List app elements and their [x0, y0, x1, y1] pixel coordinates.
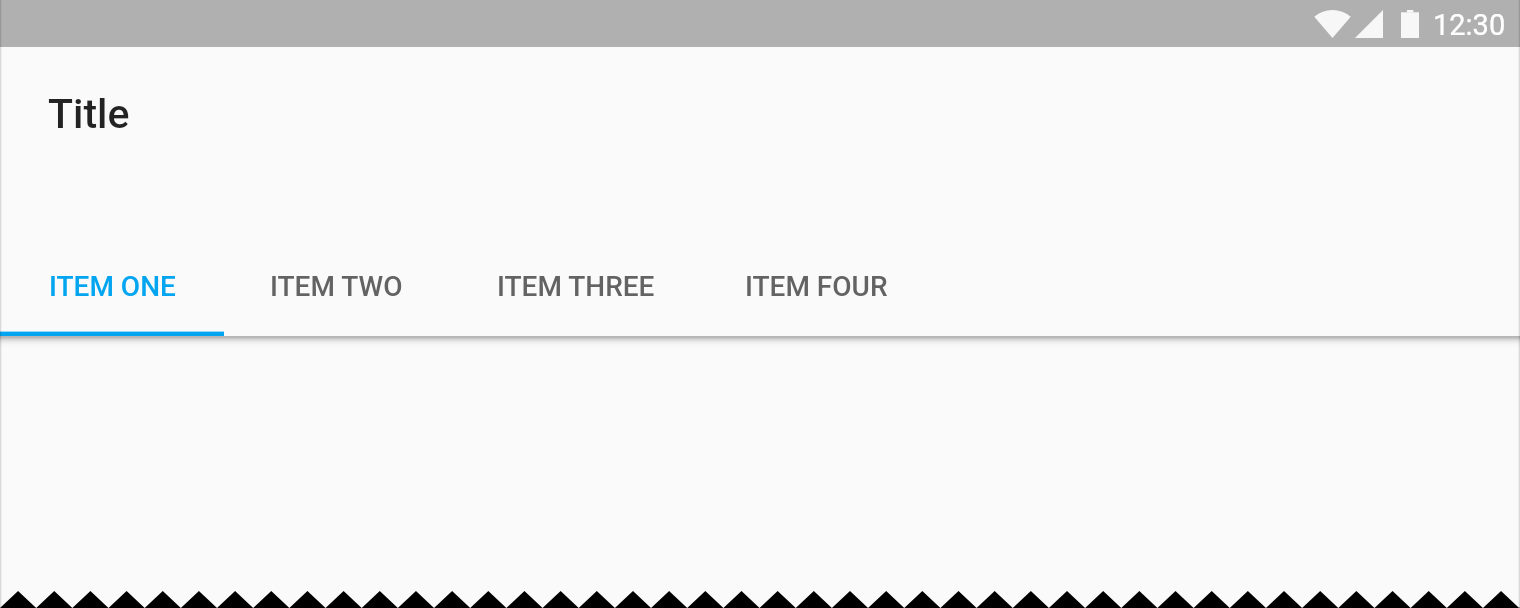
staticText: ITEM TWO [270, 270, 403, 303]
button[interactable]: ITEM THREE [448, 240, 704, 336]
other: Wi-Fi signal [1314, 10, 1351, 38]
other: Cellular signal [1355, 10, 1383, 38]
staticText: Title [48, 90, 130, 138]
staticText: ITEM THREE [497, 270, 655, 303]
staticText: ITEM ONE [49, 270, 176, 303]
other: Battery full [1401, 10, 1419, 38]
staticText: 12:30 [1433, 8, 1506, 42]
button[interactable]: ITEM TWO [224, 240, 448, 336]
button[interactable]: ITEM ONE [0, 240, 224, 336]
button[interactable]: ITEM FOUR [704, 240, 928, 336]
staticText: ITEM FOUR [745, 270, 888, 303]
